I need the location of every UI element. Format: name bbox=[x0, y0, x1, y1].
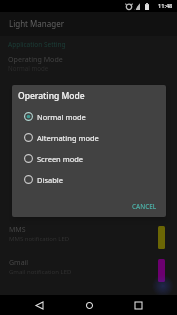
staticText: Normal mode bbox=[8, 64, 49, 72]
button[interactable]: Home bbox=[79, 295, 99, 315]
staticText: Screen mode bbox=[37, 154, 84, 164]
button[interactable]: Back bbox=[29, 295, 49, 315]
button[interactable]: Normal mode bbox=[12, 106, 166, 127]
staticText: Gmail notification LED bbox=[9, 268, 72, 276]
staticText: Alternating mode bbox=[37, 133, 99, 143]
staticText: Application Setting bbox=[8, 40, 66, 49]
staticText: MMS bbox=[9, 225, 26, 235]
button[interactable]: Gmail bbox=[0, 250, 177, 283]
button[interactable]: Alternating mode bbox=[12, 127, 166, 148]
staticText: Light Manager bbox=[9, 18, 64, 29]
button[interactable]: Screen mode bbox=[12, 148, 166, 169]
staticText: 11:48 bbox=[158, 2, 173, 10]
button[interactable]: Disable bbox=[12, 169, 166, 190]
staticText: CANCEL bbox=[132, 202, 157, 211]
button[interactable]: Operating Mode bbox=[0, 54, 177, 72]
button[interactable]: CANCEL bbox=[126, 198, 163, 215]
staticText: MMS notification LED bbox=[9, 235, 70, 243]
staticText: Gmail bbox=[9, 258, 29, 268]
staticText: Normal mode bbox=[37, 112, 86, 122]
staticText: Disable bbox=[37, 175, 63, 185]
staticText: Operating Mode bbox=[18, 90, 85, 102]
staticText: Operating Mode bbox=[8, 54, 63, 64]
button[interactable]: Recents bbox=[128, 295, 148, 315]
button[interactable]: MMS bbox=[0, 217, 177, 250]
